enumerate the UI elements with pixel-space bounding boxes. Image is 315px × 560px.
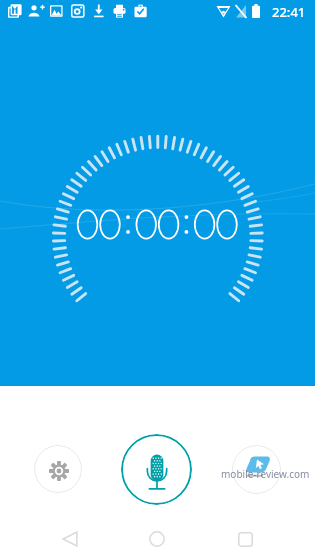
button[interactable]: Recents	[223, 517, 267, 560]
button[interactable]: Back	[48, 517, 92, 560]
button[interactable]: Recordings list	[232, 445, 281, 494]
button[interactable]: Settings	[34, 445, 82, 493]
staticText: 22:41	[272, 3, 306, 21]
staticText: mobile-review.com	[221, 467, 310, 481]
button[interactable]: Home	[135, 517, 179, 560]
button[interactable]: Record	[121, 434, 192, 505]
